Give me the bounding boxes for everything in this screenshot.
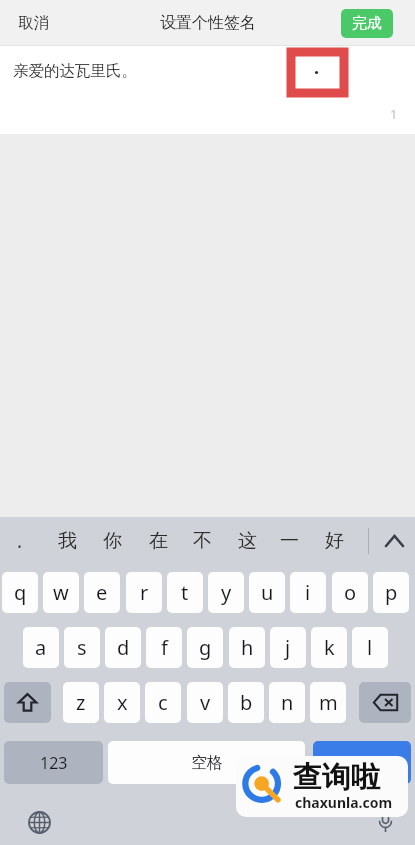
- button[interactable]: p: [373, 572, 409, 613]
- button[interactable]: Change keyboard language: [17, 802, 61, 842]
- staticText: 我: [58, 529, 77, 553]
- button[interactable]: r: [126, 572, 162, 613]
- button[interactable]: c: [145, 682, 181, 723]
- button[interactable]: 空格: [108, 741, 305, 784]
- button[interactable]: Backspace: [359, 682, 411, 723]
- staticText: .: [17, 528, 23, 554]
- staticText: j: [285, 634, 291, 661]
- button[interactable]: b: [228, 682, 264, 723]
- button[interactable]: h: [229, 627, 265, 668]
- button[interactable]: e: [84, 572, 120, 613]
- staticText: chaxunla.com: [295, 793, 393, 812]
- button[interactable]: 在: [140, 517, 176, 564]
- staticText: 完成: [352, 14, 382, 33]
- staticText: c: [158, 689, 168, 716]
- staticText: v: [200, 689, 211, 716]
- staticText: x: [117, 689, 128, 716]
- staticText: 1: [390, 105, 398, 123]
- staticText: 好: [325, 529, 344, 553]
- button[interactable]: 一: [271, 517, 307, 564]
- staticText: s: [77, 634, 87, 661]
- staticText: 取消: [18, 13, 49, 33]
- button[interactable]: l: [352, 627, 388, 668]
- staticText: n: [281, 689, 294, 716]
- button[interactable]: 你: [94, 517, 130, 564]
- button[interactable]: k: [311, 627, 347, 668]
- staticText: p: [385, 579, 398, 606]
- button[interactable]: 完成: [341, 9, 393, 38]
- staticText: 在: [149, 529, 168, 553]
- staticText: y: [221, 579, 232, 606]
- staticText: g: [199, 634, 212, 661]
- button[interactable]: d: [105, 627, 141, 668]
- button[interactable]: w: [43, 572, 79, 613]
- staticText: 不: [193, 529, 212, 553]
- button[interactable]: .: [2, 517, 38, 564]
- button[interactable]: Enter: [313, 741, 411, 784]
- button[interactable]: g: [187, 627, 223, 668]
- button[interactable]: y: [208, 572, 244, 613]
- staticText: r: [140, 579, 149, 606]
- button[interactable]: x: [104, 682, 140, 723]
- button[interactable]: 好: [316, 517, 352, 564]
- staticText: w: [53, 579, 69, 606]
- button[interactable]: i: [290, 572, 326, 613]
- button[interactable]: 我: [49, 517, 85, 564]
- button[interactable]: 不: [184, 517, 220, 564]
- button[interactable]: f: [146, 627, 182, 668]
- staticText: q: [14, 579, 27, 606]
- button[interactable]: m: [310, 682, 346, 723]
- staticText: b: [240, 689, 253, 716]
- button[interactable]: v: [187, 682, 223, 723]
- button[interactable]: u: [249, 572, 285, 613]
- button[interactable]: s: [64, 627, 100, 668]
- staticText: e: [96, 579, 108, 606]
- staticText: h: [241, 634, 254, 661]
- button[interactable]: j: [270, 627, 306, 668]
- staticText: 空格: [191, 753, 223, 773]
- button[interactable]: Voice input: [364, 802, 406, 842]
- button[interactable]: o: [332, 572, 368, 613]
- staticText: z: [76, 689, 86, 716]
- staticText: 这: [238, 529, 257, 553]
- button[interactable]: 取消: [0, 3, 63, 43]
- staticText: k: [324, 634, 335, 661]
- staticText: 你: [103, 529, 122, 553]
- button[interactable]: a: [23, 627, 59, 668]
- staticText: f: [161, 634, 168, 661]
- button[interactable]: t: [167, 572, 203, 613]
- staticText: o: [344, 579, 357, 606]
- staticText: 亲爱的达瓦里氏。: [13, 61, 137, 81]
- button[interactable]: z: [63, 682, 99, 723]
- staticText: 123: [40, 752, 68, 774]
- staticText: u: [261, 579, 274, 606]
- staticText: d: [117, 634, 130, 661]
- staticText: 一: [280, 529, 299, 553]
- staticText: 查询啦: [293, 759, 380, 796]
- staticText: a: [35, 634, 47, 661]
- button[interactable]: 这: [229, 517, 265, 564]
- staticText: l: [367, 634, 373, 661]
- staticText: 设置个性签名: [160, 13, 256, 33]
- staticText: t: [181, 579, 189, 606]
- staticText: i: [305, 579, 311, 606]
- button[interactable]: 123: [4, 741, 103, 784]
- staticText: m: [319, 689, 338, 716]
- button[interactable]: Expand candidates: [374, 517, 415, 564]
- button[interactable]: Shift: [4, 682, 51, 723]
- button[interactable]: q: [2, 572, 38, 613]
- button[interactable]: n: [269, 682, 305, 723]
